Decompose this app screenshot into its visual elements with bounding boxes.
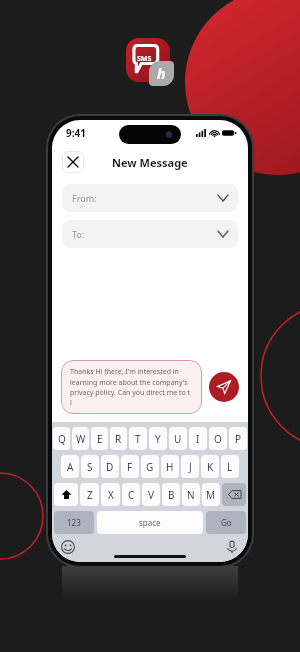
staticText: B [168, 488, 175, 502]
staticText: J [189, 460, 192, 474]
staticText: Q [58, 432, 66, 446]
button[interactable]: P [229, 427, 247, 450]
staticText: F [127, 460, 133, 474]
button[interactable]: Dictation [225, 540, 239, 554]
button[interactable]: R [110, 427, 127, 450]
staticText: I [196, 432, 200, 446]
button[interactable]: L [221, 455, 239, 478]
staticText: Go [221, 517, 232, 528]
button[interactable]: Close [62, 151, 84, 173]
button[interactable]: C [122, 483, 140, 506]
staticText: T [135, 432, 141, 446]
staticText: D [106, 460, 114, 474]
button[interactable]: To: [62, 220, 238, 248]
staticText: H [166, 460, 174, 474]
button[interactable]: G [141, 455, 159, 478]
button[interactable]: F [121, 455, 139, 478]
button[interactable]: Emoji [61, 540, 75, 554]
staticText: Z [87, 488, 93, 502]
button[interactable]: X [101, 483, 120, 506]
staticText: U [174, 432, 182, 446]
button[interactable]: Shift [54, 483, 78, 506]
staticText: 9:41 [66, 126, 86, 140]
staticText: C [128, 488, 135, 502]
staticText: O [214, 432, 222, 446]
button[interactable]: S [81, 455, 99, 478]
staticText: space [139, 517, 161, 528]
staticText: G [146, 460, 154, 474]
button[interactable]: Y [149, 427, 167, 450]
button[interactable]: I [189, 427, 207, 450]
staticText: P [235, 432, 242, 446]
staticText: L [227, 460, 233, 474]
button[interactable]: U [169, 427, 187, 450]
staticText: N [187, 488, 195, 502]
staticText: M [206, 488, 216, 502]
staticText: From: [72, 192, 97, 204]
button[interactable]: 123 [54, 511, 94, 534]
staticText: 123 [67, 517, 81, 528]
staticText: h [157, 64, 166, 83]
button[interactable]: H [161, 455, 179, 478]
button[interactable]: Send [209, 372, 239, 402]
button[interactable]: A [61, 455, 79, 478]
staticText: V [148, 488, 154, 502]
staticText: X [108, 488, 114, 502]
staticText: K [207, 460, 214, 474]
button[interactable]: D [101, 455, 119, 478]
button[interactable]: M [202, 483, 220, 506]
button[interactable]: B [162, 483, 180, 506]
staticText: SMS [137, 54, 152, 64]
button[interactable]: W [72, 427, 89, 450]
button[interactable]: V [142, 483, 160, 506]
staticText: R [115, 432, 122, 446]
button[interactable]: From: [62, 184, 238, 212]
staticText: E [97, 432, 103, 446]
staticText: A [67, 460, 74, 474]
button[interactable]: Q [53, 427, 70, 450]
staticText: W [76, 432, 86, 446]
button[interactable]: E [91, 427, 108, 450]
button[interactable]: K [201, 455, 219, 478]
staticText: To: [72, 228, 85, 240]
staticText: New Message [112, 155, 188, 170]
button[interactable]: N [182, 483, 200, 506]
button[interactable]: Thanks Hi there, I'm interested in learn… [61, 360, 202, 414]
button[interactable]: O [209, 427, 227, 450]
button[interactable]: Go [206, 511, 246, 534]
button[interactable]: J [181, 455, 199, 478]
staticText: Y [155, 432, 161, 446]
staticText: Thanks Hi there, I'm interested in learn… [70, 367, 193, 407]
button[interactable]: space [97, 511, 203, 534]
staticText: S [87, 460, 93, 474]
button[interactable]: Backspace [222, 483, 246, 506]
button[interactable]: T [129, 427, 147, 450]
other: SMS app icon [126, 38, 170, 82]
button[interactable]: Z [80, 483, 99, 506]
